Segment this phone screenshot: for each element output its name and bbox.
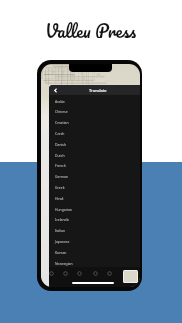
staticText: Valley Press [45,16,137,38]
staticText: Hungarian [55,207,72,212]
staticText: Norwegian [55,261,73,266]
button[interactable]: Danish [49,139,140,150]
button[interactable]: Forward [60,268,70,278]
staticText: Czech [55,131,65,136]
button[interactable]: Greek [49,182,140,193]
button[interactable]: Icelandic [49,214,140,225]
staticText: Danish [55,142,67,147]
staticText: Translate [89,88,107,93]
button[interactable]: Tabs [104,268,114,278]
button[interactable]: Norwegian [49,258,140,269]
staticText: Croatian [55,120,69,125]
staticText: Dutch [55,153,65,158]
button[interactable]: Czech [49,128,140,139]
button[interactable]: German [49,171,140,182]
staticText: Korean [55,250,67,255]
staticText: Greek [55,185,65,190]
staticText: Italian [55,228,66,233]
button[interactable]: Share [74,268,84,278]
staticText: Arabic [55,99,65,104]
button[interactable]: Arabic [49,96,140,107]
button[interactable]: Back [49,85,62,95]
staticText: French [55,163,66,168]
staticText: Japanese [55,239,70,244]
staticText: German [55,174,68,179]
staticText: Hindi [55,196,64,201]
button[interactable]: Back [46,268,56,278]
button[interactable]: Japanese [49,236,140,247]
button[interactable]: Croatian [49,117,140,128]
button[interactable]: Hindi [49,193,140,204]
button[interactable]: French [49,160,140,171]
button[interactable]: Dutch [49,150,140,161]
staticText: Icelandic [55,217,70,222]
button[interactable]: Hungarian [49,204,140,215]
button[interactable]: Korean [49,247,140,258]
button[interactable]: Bookmarks [90,268,100,278]
button[interactable]: Chinese [49,106,140,117]
button[interactable]: Italian [49,225,140,236]
staticText: Chinese [55,109,68,114]
